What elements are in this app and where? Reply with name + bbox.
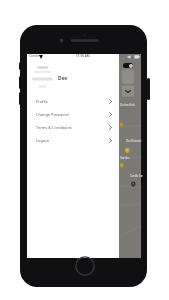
staticText: The Retreat: [126, 139, 142, 143]
button[interactable]: Profile: [27, 95, 119, 108]
staticText: Dev: [58, 75, 68, 82]
staticText: Castle Inn: [130, 174, 144, 178]
staticText: Logout: [36, 138, 49, 143]
staticText: Profile: [36, 99, 48, 104]
button[interactable]: Toggle tracking: [123, 63, 133, 68]
button[interactable]: Expand: [122, 86, 134, 97]
staticText: 11:50 AM: [76, 54, 90, 58]
button[interactable]: Logout: [27, 134, 119, 147]
staticText: Qubes Hub: [120, 103, 135, 107]
staticText: Garden: [120, 156, 130, 160]
button[interactable]: Terms & Conditions: [27, 121, 119, 134]
staticText: Terms & Conditions: [36, 125, 72, 130]
staticText: Change Password: [36, 112, 69, 117]
staticText: Carrier: [29, 54, 40, 58]
button[interactable]: Change Password: [27, 108, 119, 121]
